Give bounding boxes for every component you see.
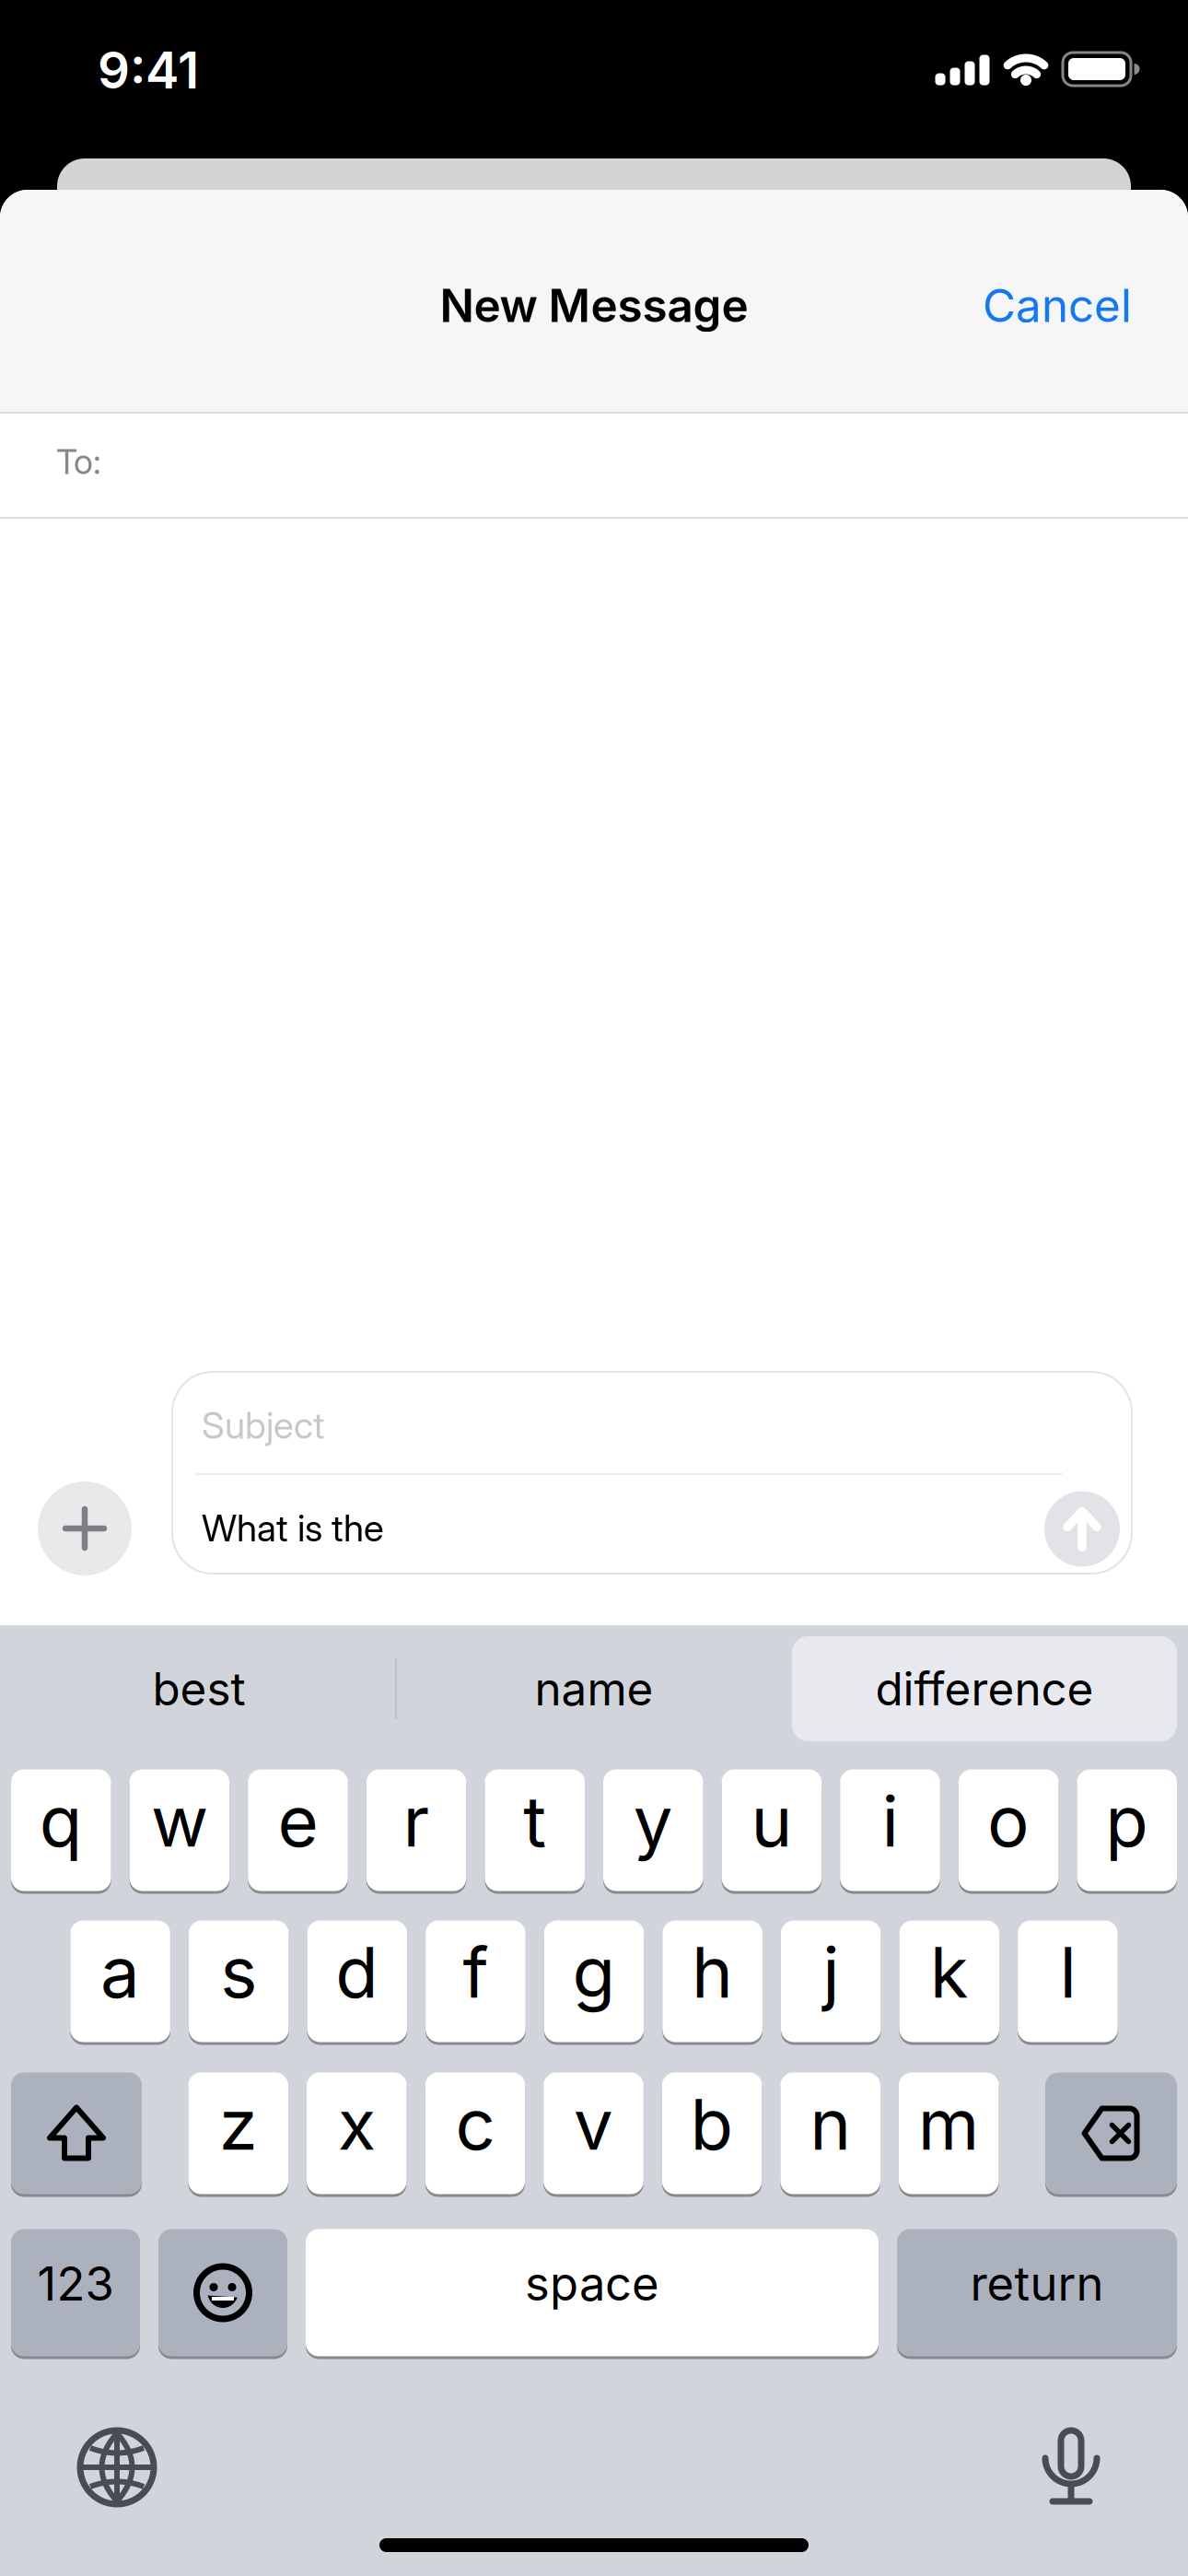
button[interactable]: name [0, 1625, 1188, 1768]
button[interactable]: g [544, 1919, 644, 2043]
staticText: t [523, 1780, 546, 1862]
staticText: s [220, 1931, 257, 2013]
staticText: name [535, 1662, 653, 1716]
staticText: What is the [202, 1506, 384, 1550]
button[interactable]: v [544, 2071, 644, 2195]
staticText: m [918, 2083, 980, 2165]
staticText: return [970, 2256, 1104, 2311]
button[interactable]: w [129, 1768, 229, 1892]
button[interactable]: b [662, 2071, 762, 2195]
button[interactable]: k [899, 1919, 999, 2043]
staticText: New Message [440, 279, 748, 332]
button[interactable]: m [899, 2071, 999, 2195]
button[interactable]: To [0, 414, 1188, 517]
staticText: b [690, 2083, 734, 2165]
staticText: j [823, 1931, 839, 2013]
button[interactable]: t [485, 1768, 585, 1892]
button[interactable]: Emoji [158, 2228, 287, 2358]
staticText: h [692, 1931, 733, 2013]
button[interactable]: j [781, 1919, 881, 2043]
button[interactable]: u [722, 1768, 822, 1892]
button[interactable]: r [366, 1768, 466, 1892]
button[interactable]: space [306, 2228, 879, 2358]
button[interactable]: 123 [11, 2228, 140, 2358]
staticText: u [751, 1780, 792, 1862]
staticText: a [100, 1931, 140, 2013]
button[interactable]: More options [38, 1481, 132, 1575]
staticText: r [403, 1780, 430, 1862]
button[interactable]: Dictate [1044, 2427, 1098, 2508]
staticText: o [987, 1780, 1030, 1862]
staticText: l [1059, 1931, 1076, 2013]
button[interactable]: x [307, 2071, 407, 2195]
staticText: 9:41 [98, 40, 199, 100]
staticText: Cancel [983, 279, 1132, 332]
button[interactable]: e [248, 1768, 348, 1892]
button[interactable]: difference [0, 1625, 1188, 1768]
button[interactable]: s [189, 1919, 289, 2043]
staticText: y [633, 1780, 673, 1862]
button[interactable]: d [307, 1919, 407, 2043]
button[interactable]: a [70, 1919, 170, 2043]
staticText: z [219, 2083, 258, 2165]
button[interactable]: p [1077, 1768, 1177, 1892]
button[interactable]: f [426, 1919, 526, 2043]
staticText: Subject [202, 1404, 325, 1447]
button[interactable]: y [603, 1768, 703, 1892]
staticText: c [455, 2083, 495, 2165]
button[interactable]: q [11, 1768, 111, 1892]
button[interactable]: Shift [11, 2071, 142, 2195]
staticText: To: [56, 441, 101, 482]
staticText: d [335, 1931, 379, 2013]
staticText: p [1105, 1780, 1149, 1862]
button[interactable]: Cancel [983, 279, 1132, 332]
staticText: n [810, 2083, 851, 2165]
staticText: 123 [37, 2256, 114, 2311]
staticText: space [525, 2256, 659, 2311]
staticText: x [338, 2083, 376, 2165]
button[interactable]: l [1018, 1919, 1118, 2043]
staticText: difference [875, 1662, 1094, 1716]
staticText: k [930, 1931, 969, 2013]
staticText: best [152, 1662, 245, 1716]
button[interactable]: o [959, 1768, 1059, 1892]
button[interactable]: Next keyboard [78, 2429, 156, 2506]
button[interactable]: h [662, 1919, 762, 2043]
button[interactable]: z [188, 2071, 288, 2195]
staticText: i [882, 1780, 898, 1862]
button[interactable]: i [840, 1768, 940, 1892]
staticText: v [574, 2083, 613, 2165]
staticText: g [572, 1931, 616, 2013]
staticText: f [463, 1931, 488, 2013]
button[interactable]: c [425, 2071, 525, 2195]
button[interactable]: n [780, 2071, 880, 2195]
staticText: e [278, 1780, 318, 1862]
button[interactable]: Delete [1045, 2071, 1177, 2195]
staticText: q [39, 1780, 83, 1862]
button[interactable]: Send [1044, 1491, 1120, 1567]
button[interactable]: return [897, 2228, 1177, 2358]
staticText: w [151, 1780, 208, 1862]
button[interactable]: best [0, 1625, 1188, 1768]
